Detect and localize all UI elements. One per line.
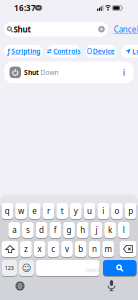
staticText: Device	[93, 47, 115, 56]
button[interactable]: m	[102, 240, 114, 257]
staticText: j	[95, 225, 97, 235]
staticText: 123	[5, 264, 14, 272]
button[interactable]: Clear text	[97, 24, 106, 34]
button[interactable]: q	[1, 202, 13, 219]
button[interactable]: h	[77, 221, 89, 238]
staticText: Scripting	[11, 47, 40, 56]
staticText: h	[80, 225, 85, 235]
button[interactable]: Show info	[120, 67, 129, 77]
staticText: v	[65, 244, 69, 254]
button[interactable]: c	[47, 240, 59, 257]
staticText: n	[92, 244, 97, 254]
staticText: s	[26, 225, 30, 235]
staticText: y	[74, 206, 78, 216]
button[interactable]: Delete	[119, 240, 136, 257]
staticText: z	[24, 244, 28, 254]
button[interactable]: y	[70, 202, 82, 219]
staticText: w	[18, 206, 24, 216]
button[interactable]: t	[56, 202, 68, 219]
button[interactable]: Cancel	[113, 24, 138, 34]
button[interactable]: f	[49, 221, 61, 238]
staticText: a	[12, 225, 16, 235]
button[interactable]: x	[34, 240, 45, 257]
button[interactable]: k	[104, 221, 116, 238]
button[interactable]: Emoji	[19, 259, 34, 276]
button[interactable]: Device	[85, 45, 117, 57]
button[interactable]: d	[36, 221, 47, 238]
button[interactable]: e	[29, 202, 41, 219]
button[interactable]: o	[111, 202, 123, 219]
staticText: i	[102, 206, 104, 216]
button[interactable]: n	[89, 240, 100, 257]
button[interactable]: Search	[103, 259, 136, 276]
button[interactable]: w	[15, 202, 27, 219]
staticText: c	[51, 244, 55, 254]
staticText: e	[32, 206, 37, 216]
staticText: b	[78, 244, 83, 254]
button[interactable]: b	[75, 240, 86, 257]
staticText: d	[39, 225, 44, 235]
button[interactable]: j	[90, 221, 102, 238]
staticText: 16:37	[14, 3, 36, 13]
staticText: Loc	[132, 47, 138, 56]
button[interactable]: u	[84, 202, 95, 219]
button[interactable]: s	[22, 221, 34, 238]
staticText: o	[114, 206, 119, 216]
button[interactable]: Controls	[47, 45, 81, 57]
staticText: i	[123, 66, 126, 78]
staticText: Controls	[53, 47, 80, 56]
button[interactable]: v	[61, 240, 73, 257]
staticText: p	[128, 206, 133, 216]
button[interactable]: Dictation	[105, 279, 118, 292]
staticText: k	[108, 225, 112, 235]
button[interactable]: r	[43, 202, 54, 219]
staticText: u	[87, 206, 92, 216]
staticText: f	[54, 225, 57, 235]
button[interactable]: Shut	[4, 62, 134, 83]
button[interactable]: i	[97, 202, 109, 219]
staticText: l	[123, 225, 125, 235]
staticText: ☺	[21, 263, 31, 273]
button[interactable]: Loc	[121, 45, 138, 57]
staticText: space	[85, 266, 100, 273]
staticText: Down	[40, 68, 58, 77]
button[interactable]: Numbers	[1, 259, 17, 276]
staticText: q	[5, 206, 10, 216]
button[interactable]: Shift	[1, 240, 18, 257]
staticText: r	[47, 206, 50, 216]
staticText: Cancel	[114, 24, 138, 35]
staticText: g	[66, 225, 71, 235]
staticText: ƒ	[7, 47, 10, 56]
staticText: Shut	[24, 68, 39, 77]
staticText: m	[105, 244, 112, 254]
button[interactable]: Next keyboard	[13, 279, 26, 292]
button[interactable]: g	[63, 221, 75, 238]
staticText: t	[61, 206, 64, 216]
button[interactable]: z	[20, 240, 32, 257]
button[interactable]: p	[125, 202, 136, 219]
staticText: x	[38, 244, 42, 254]
staticText: Shut	[13, 24, 30, 35]
button[interactable]: space	[36, 259, 99, 276]
button[interactable]: l	[118, 221, 130, 238]
button[interactable]: a	[8, 221, 20, 238]
button[interactable]: ƒ	[4, 45, 43, 57]
